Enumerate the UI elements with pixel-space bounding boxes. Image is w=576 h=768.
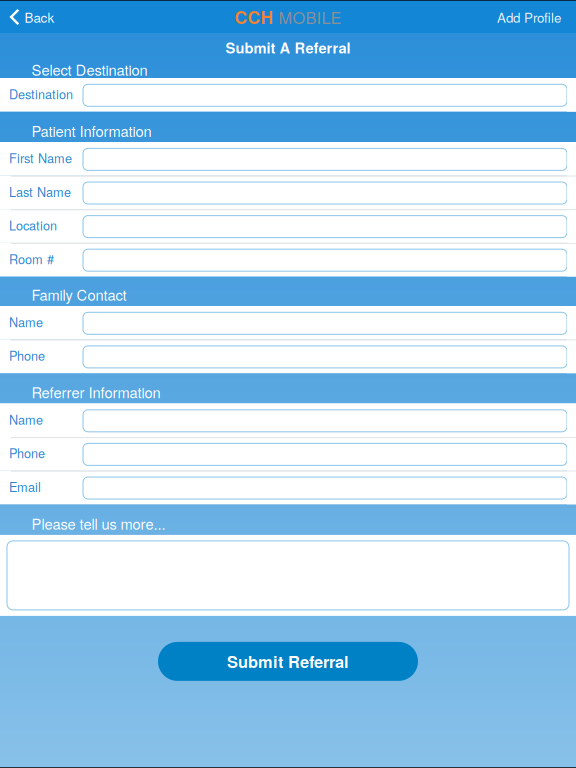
button[interactable]: Phone (0, 340, 576, 373)
staticText: First Name (9, 149, 72, 167)
staticText: Family Contact (31, 284, 126, 305)
button[interactable]: Back (0, 1, 120, 33)
button[interactable]: Additional details (0, 535, 576, 616)
button[interactable]: Room # (0, 243, 576, 276)
staticText: CCH (234, 5, 273, 29)
staticText: Select Destination (31, 59, 147, 80)
button[interactable]: First Name (0, 142, 576, 176)
staticText: Back (24, 7, 54, 27)
button[interactable]: Add Profile (436, 1, 576, 33)
button[interactable]: Destination (0, 78, 576, 112)
staticText: Please tell us more... (31, 513, 165, 534)
staticText: Destination (9, 85, 73, 103)
button[interactable]: Last Name (0, 176, 576, 209)
button[interactable]: Name (0, 306, 576, 340)
staticText: Submit A Referral (225, 37, 350, 58)
button[interactable]: Phone (0, 437, 576, 471)
staticText: Location (9, 216, 57, 234)
staticText: MOBILE (273, 5, 341, 29)
staticText: Phone (9, 346, 45, 364)
staticText: Submit Referral (227, 650, 349, 673)
staticText: Name (9, 410, 43, 428)
button[interactable]: Submit Referral (158, 642, 418, 681)
button[interactable]: Email (0, 471, 576, 504)
staticText: Email (9, 477, 41, 495)
button[interactable]: Location (0, 209, 576, 243)
staticText: Patient Information (31, 120, 151, 141)
staticText: Room # (9, 250, 54, 268)
staticText: Phone (9, 444, 45, 462)
staticText: Name (9, 313, 43, 331)
staticText: Last Name (9, 182, 71, 200)
staticText: Referrer Information (31, 381, 160, 402)
button[interactable]: Name (0, 403, 576, 437)
staticText: Add Profile (497, 7, 561, 27)
